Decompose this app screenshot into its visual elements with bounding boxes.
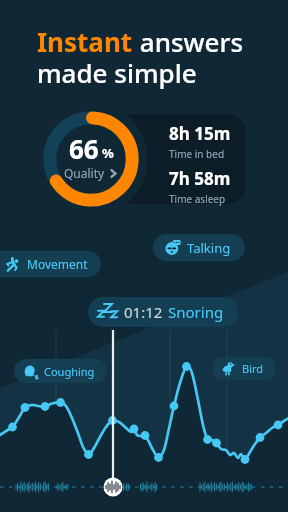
staticText: answers	[133, 24, 244, 59]
button[interactable]: Bird	[212, 357, 276, 380]
staticText: 8h 15m	[169, 122, 231, 145]
button[interactable]: 01:12	[88, 297, 238, 327]
staticText: 01:12	[124, 302, 163, 322]
staticText: Coughing	[44, 364, 95, 379]
staticText: Bird	[242, 361, 264, 376]
staticText: 66	[69, 131, 99, 166]
staticText: Time in bed	[169, 147, 225, 161]
staticText: %	[102, 144, 114, 162]
button[interactable]: Talking	[153, 234, 245, 261]
button[interactable]: Movement	[0, 251, 101, 277]
staticText: Instant	[37, 24, 133, 59]
staticText: Time asleep	[169, 192, 226, 206]
button[interactable]: 66	[36, 104, 146, 214]
button[interactable]	[80, 114, 246, 204]
staticText: Movement	[27, 256, 88, 272]
staticText: Snoring	[168, 302, 224, 322]
button[interactable]: Coughing	[14, 359, 107, 383]
staticText: 7h 58m	[169, 167, 231, 190]
staticText: made simple	[37, 55, 197, 90]
staticText: Talking	[187, 239, 231, 257]
staticText: Quality	[64, 165, 105, 181]
